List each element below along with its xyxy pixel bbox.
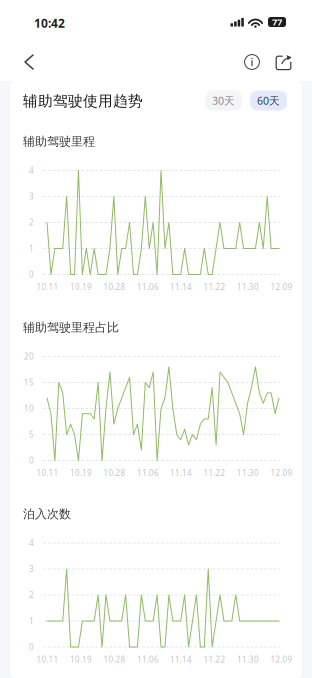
staticText: 辅助驾驶里程占比 [23, 320, 119, 335]
staticText: 11.22 [203, 468, 225, 478]
staticText: 77 [272, 16, 282, 28]
staticText: 4 [29, 538, 34, 548]
staticText: 12.09 [270, 654, 292, 665]
button[interactable]: Back [14, 47, 44, 77]
staticText: 12.09 [270, 468, 292, 478]
staticText: 11.06 [137, 468, 159, 478]
staticText: 10:42 [34, 15, 65, 31]
staticText: 10 [24, 403, 34, 414]
staticText: 0 [29, 269, 34, 280]
staticText: 11.22 [203, 654, 225, 665]
staticText: 5 [29, 429, 34, 440]
button[interactable]: Information [239, 49, 265, 75]
staticText: 1 [29, 616, 34, 626]
staticText: 11.14 [170, 654, 192, 665]
button[interactable]: 30天 [205, 90, 242, 110]
button[interactable]: 60天 [250, 90, 287, 110]
staticText: 10.11 [36, 282, 58, 292]
staticText: 11.22 [203, 282, 225, 292]
staticText: 10.11 [36, 654, 58, 665]
staticText: 0 [29, 455, 34, 466]
staticText: 2 [29, 590, 34, 600]
staticText: 辅助驾驶里程 [23, 134, 95, 149]
staticText: 11.30 [237, 468, 259, 478]
staticText: 15 [24, 377, 34, 388]
staticText: 12.09 [270, 282, 292, 292]
staticText: 10.28 [103, 282, 125, 292]
staticText: 泊入次数 [23, 507, 71, 521]
staticText: 11.06 [137, 282, 159, 292]
staticText: 30天 [212, 93, 235, 108]
staticText: 辅助驾驶使用趋势 [23, 92, 143, 110]
staticText: 0 [29, 642, 34, 652]
staticText: 2 [29, 217, 34, 228]
staticText: 3 [29, 191, 34, 202]
staticText: 10.19 [70, 654, 92, 665]
staticText: 60天 [257, 93, 280, 108]
staticText: 11.30 [237, 654, 259, 665]
staticText: 4 [29, 165, 34, 176]
staticText: 10.28 [103, 468, 125, 478]
staticText: 10.19 [70, 468, 92, 478]
button[interactable]: Share [271, 49, 297, 75]
staticText: 11.30 [237, 282, 259, 292]
staticText: 11.14 [170, 468, 192, 478]
staticText: 3 [29, 564, 34, 574]
staticText: 10.19 [70, 282, 92, 292]
staticText: 10.11 [36, 468, 58, 478]
staticText: 10.28 [103, 654, 125, 665]
staticText: 1 [29, 243, 34, 254]
staticText: 11.06 [137, 654, 159, 665]
staticText: 20 [24, 351, 34, 362]
staticText: 11.14 [170, 282, 192, 292]
